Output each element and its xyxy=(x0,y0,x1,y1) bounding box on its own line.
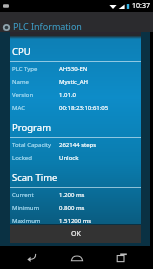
staticText: Total Capacity xyxy=(12,141,59,149)
staticText: Version xyxy=(12,91,59,99)
staticText: 00:18:23:10:61:05 xyxy=(59,104,109,112)
button[interactable]: App icon xyxy=(2,23,11,32)
staticText: 10:37 xyxy=(132,1,150,11)
button[interactable]: Locked xyxy=(10,151,141,164)
button[interactable]: Back xyxy=(17,246,45,269)
staticText: MAC xyxy=(12,104,59,112)
staticText: Locked xyxy=(12,154,59,162)
staticText: OK xyxy=(71,229,81,239)
staticText: Scan Time xyxy=(12,171,58,184)
button[interactable]: Version xyxy=(10,88,141,101)
button[interactable]: Maximum xyxy=(10,214,141,227)
staticText: Maximum xyxy=(12,217,59,225)
staticText: Unlock xyxy=(59,154,79,162)
staticText: Program xyxy=(12,121,52,134)
staticText: Current xyxy=(12,191,59,199)
staticText: AH530-EN xyxy=(59,65,88,73)
staticText: 0.800 ms xyxy=(59,204,85,212)
staticText: CPU xyxy=(12,45,31,58)
staticText: 1.200 ms xyxy=(59,191,85,199)
button[interactable]: MAC xyxy=(10,101,141,114)
button[interactable]: Name xyxy=(10,75,141,88)
button[interactable]: PLC Type xyxy=(10,62,141,75)
button[interactable]: Recents xyxy=(108,246,136,269)
staticText: 1.01.0 xyxy=(59,91,76,99)
staticText: 1.51200 ms xyxy=(59,217,92,225)
staticText: PLC Information xyxy=(13,20,82,32)
button[interactable]: OK xyxy=(10,225,141,243)
staticText: Mystic_AH xyxy=(59,78,88,86)
staticText: 262144 steps xyxy=(59,141,97,149)
button[interactable]: Total Capacity xyxy=(10,138,141,151)
button[interactable]: Current xyxy=(10,188,141,201)
button[interactable]: Minimum xyxy=(10,201,141,214)
button[interactable]: Home xyxy=(63,246,91,269)
staticText: Minimum xyxy=(12,204,59,212)
staticText: PLC Type xyxy=(12,65,59,73)
staticText: Name xyxy=(12,78,59,86)
